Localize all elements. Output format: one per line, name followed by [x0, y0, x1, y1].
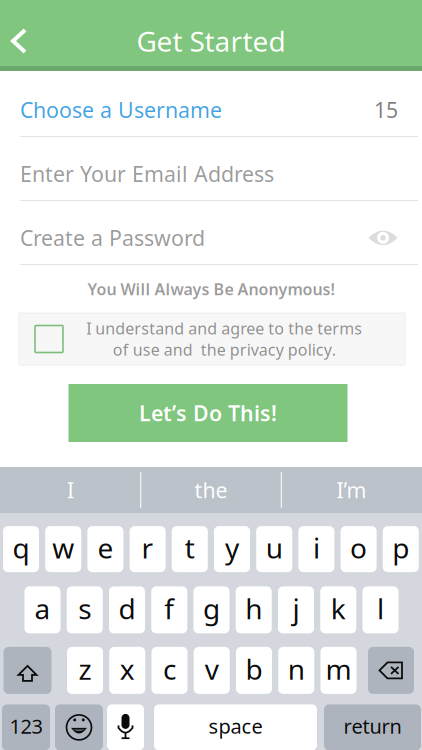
button[interactable]: Let’s Do This! [68, 384, 347, 442]
staticText: m [325, 650, 351, 687]
staticText: w [52, 529, 74, 566]
staticText: d [118, 590, 135, 627]
staticText: z [78, 650, 91, 687]
button[interactable]: u [256, 526, 292, 572]
staticText: c [163, 650, 176, 687]
button[interactable]: I [1, 467, 140, 513]
staticText: p [392, 529, 409, 566]
staticText: Get Started [136, 22, 285, 60]
button[interactable]: c [151, 647, 187, 694]
button[interactable]: I understand and agree to the terms of u… [0, 313, 422, 365]
staticText: Enter Your Email Address [20, 160, 274, 188]
button[interactable]: r [130, 526, 166, 572]
staticText: return [343, 713, 401, 739]
staticText: n [288, 650, 305, 687]
staticText: the [194, 476, 227, 504]
staticText: f [164, 590, 174, 627]
staticText: I’m [336, 476, 366, 504]
button[interactable]: g [193, 586, 229, 633]
button[interactable]: the [141, 467, 281, 513]
staticText: I understand and agree to the terms of u… [86, 318, 362, 360]
button[interactable]: space [154, 704, 317, 750]
staticText: i [313, 529, 320, 566]
staticText: y [225, 529, 239, 566]
button[interactable]: Delete [368, 647, 414, 694]
button[interactable]: a [24, 586, 60, 633]
staticText: l [377, 590, 384, 627]
button[interactable]: d [109, 586, 145, 633]
staticText: o [350, 529, 367, 566]
button[interactable]: x [109, 647, 145, 694]
staticText: b [245, 650, 262, 687]
staticText: a [34, 590, 50, 627]
staticText: 123 [9, 713, 42, 739]
button[interactable]: o [341, 526, 377, 572]
button[interactable]: k [320, 586, 356, 633]
staticText: v [205, 650, 219, 687]
button[interactable]: l [362, 586, 398, 633]
button[interactable]: p [383, 526, 419, 572]
staticText: t [185, 529, 195, 566]
staticText: Create a Password [20, 224, 205, 252]
staticText: u [266, 529, 283, 566]
button[interactable]: w [45, 526, 81, 572]
button[interactable]: 123 [2, 704, 50, 750]
staticText: Choose a Username [20, 96, 222, 124]
button[interactable]: Dictate [107, 704, 144, 750]
staticText: g [203, 590, 220, 627]
staticText: r [142, 529, 154, 566]
button[interactable]: n [278, 647, 314, 694]
staticText: Let’s Do This! [139, 399, 277, 427]
staticText: You Will Always Be Anonymous! [87, 278, 334, 300]
button[interactable]: j [278, 586, 314, 633]
button[interactable]: Back [0, 17, 38, 65]
button[interactable]: I’m [282, 467, 421, 513]
button[interactable]: e [87, 526, 123, 572]
button[interactable]: return [324, 704, 421, 750]
staticText: 15 [374, 96, 398, 124]
staticText: q [12, 529, 29, 566]
button[interactable]: m [320, 647, 356, 694]
button[interactable]: t [172, 526, 208, 572]
button[interactable]: i [298, 526, 334, 572]
staticText: e [97, 529, 113, 566]
button[interactable]: Emoji [55, 704, 103, 750]
staticText: s [78, 590, 91, 627]
button[interactable]: q [3, 526, 39, 572]
button[interactable]: z [67, 647, 103, 694]
button[interactable]: b [236, 647, 272, 694]
button[interactable]: Show password [368, 230, 398, 246]
button[interactable]: s [67, 586, 103, 633]
staticText: x [120, 650, 135, 687]
button[interactable]: h [236, 586, 272, 633]
staticText: h [245, 590, 262, 627]
button[interactable]: v [194, 647, 230, 694]
button[interactable]: Shift [3, 647, 51, 694]
staticText: I [67, 476, 74, 504]
button[interactable]: f [151, 586, 187, 633]
staticText: j [292, 590, 299, 627]
staticText: space [208, 713, 262, 739]
button[interactable]: y [214, 526, 250, 572]
staticText: k [331, 590, 346, 627]
